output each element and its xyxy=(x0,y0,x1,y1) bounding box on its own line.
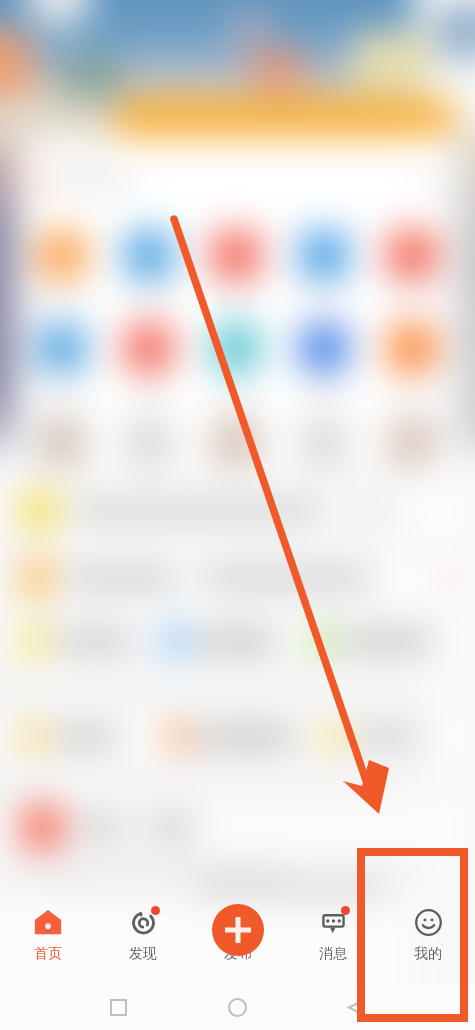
staticText: 消息 xyxy=(319,945,347,963)
button[interactable]: 发布 xyxy=(212,904,264,956)
button[interactable]: Back xyxy=(297,985,416,1030)
button[interactable]: 我的 xyxy=(380,892,475,985)
button[interactable]: 发布 xyxy=(190,892,285,985)
button[interactable]: 消息 xyxy=(285,892,380,985)
button[interactable]: 首页 xyxy=(0,892,95,985)
button[interactable]: 发现 xyxy=(95,892,190,985)
staticText: 首页 xyxy=(34,945,62,963)
button[interactable]: Home xyxy=(178,985,297,1030)
staticText: 我的 xyxy=(414,945,442,963)
staticText: 发布 xyxy=(224,945,252,963)
button[interactable]: Recents xyxy=(59,985,178,1030)
staticText: 发现 xyxy=(129,945,157,963)
